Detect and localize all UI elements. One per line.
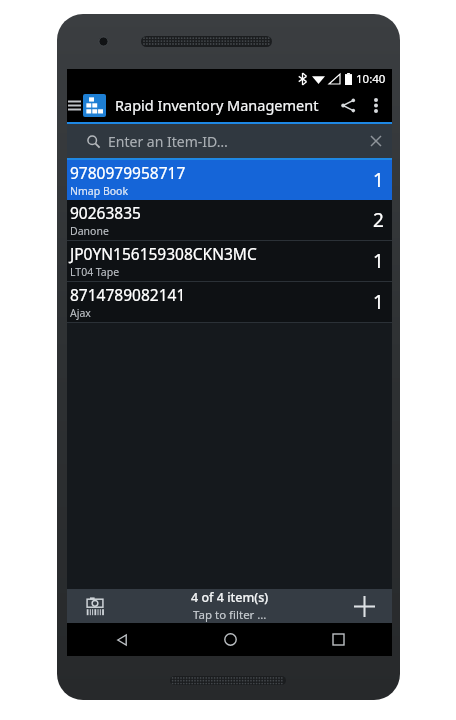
staticText: 4 of 4 item(s) (191, 589, 269, 606)
staticText: Ajax (70, 306, 91, 320)
button[interactable]: More options (363, 88, 389, 122)
button[interactable]: JP0YN156159308CKN3MC (67, 241, 392, 282)
staticText: Danone (70, 224, 109, 238)
staticText: 8714789082141 (70, 284, 186, 305)
button[interactable]: Add item (336, 589, 392, 623)
button[interactable]: Share (333, 88, 363, 122)
button[interactable]: Clear search (363, 124, 389, 158)
button[interactable]: Scan barcode with camera (67, 589, 123, 623)
button[interactable]: Back (67, 623, 176, 656)
staticText: 10:40 (356, 71, 386, 87)
button[interactable]: 90263835 (67, 200, 392, 241)
staticText: 9780979958717 (70, 162, 186, 183)
button[interactable]: Recent apps (284, 623, 392, 656)
staticText: 1 (373, 248, 384, 274)
button[interactable]: Navigation drawer (67, 88, 81, 122)
staticText: Enter an Item-ID… (108, 132, 228, 151)
button[interactable]: 9780979958717 (67, 160, 392, 200)
staticText: Rapid Inventory Management (115, 95, 319, 115)
staticText: LT04 Tape (70, 265, 120, 279)
staticText: 2 (373, 207, 384, 233)
staticText: 90263835 (70, 202, 141, 223)
button[interactable]: 8714789082141 (67, 282, 392, 323)
staticText: Nmap Book (70, 184, 129, 198)
button[interactable]: Home (176, 623, 284, 656)
staticText: Tap to filter … (193, 607, 267, 623)
button[interactable]: Enter an Item-ID… (67, 124, 392, 158)
staticText: 1 (373, 289, 384, 315)
staticText: 1 (373, 167, 384, 193)
button[interactable]: App icon (83, 94, 106, 117)
staticText: JP0YN156159308CKN3MC (70, 243, 257, 264)
